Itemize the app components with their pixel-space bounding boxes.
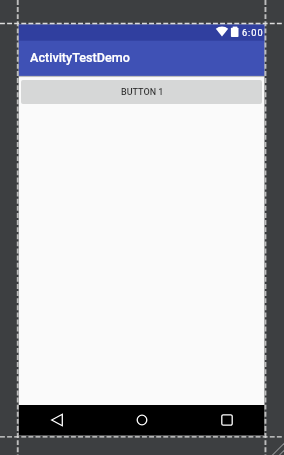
button[interactable]: Back xyxy=(41,405,73,435)
button[interactable]: BUTTON 1 xyxy=(21,80,262,104)
staticText: BUTTON 1 xyxy=(121,87,164,98)
staticText: ActivityTestDemo xyxy=(30,50,130,65)
button[interactable]: Recent apps xyxy=(211,405,243,435)
button[interactable]: Home xyxy=(126,405,158,435)
staticText: 6:00 xyxy=(242,27,264,38)
